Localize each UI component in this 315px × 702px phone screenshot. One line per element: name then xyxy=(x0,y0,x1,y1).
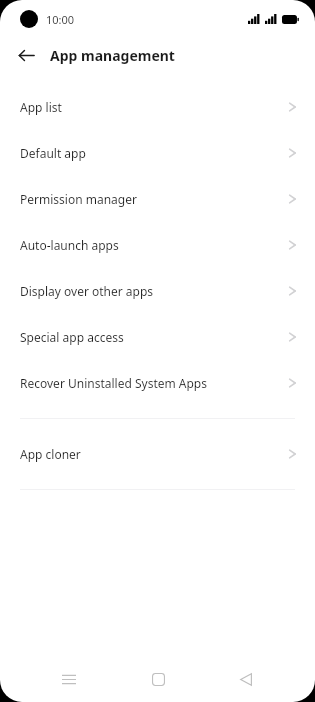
staticText: App list xyxy=(20,99,288,115)
staticText: Default app xyxy=(20,145,288,161)
button[interactable]: Special app access xyxy=(0,314,315,360)
button[interactable]: Display over other apps xyxy=(0,268,315,314)
button[interactable]: App cloner xyxy=(0,431,315,477)
button[interactable]: Home xyxy=(138,659,178,699)
staticText: Permission manager xyxy=(20,191,288,207)
staticText: Special app access xyxy=(20,329,288,345)
staticText: 10:00 xyxy=(46,12,75,27)
button[interactable]: Recent apps xyxy=(49,659,89,699)
button[interactable]: Permission manager xyxy=(0,176,315,222)
button[interactable]: Recover Uninstalled System Apps xyxy=(0,360,315,406)
button[interactable]: App list xyxy=(0,84,315,130)
button[interactable]: Auto-launch apps xyxy=(0,222,315,268)
staticText: App management xyxy=(50,46,175,65)
button[interactable]: Back xyxy=(226,659,266,699)
staticText: Recover Uninstalled System Apps xyxy=(20,375,288,391)
button[interactable]: Back xyxy=(12,41,40,69)
staticText: Display over other apps xyxy=(20,283,288,299)
staticText: Auto-launch apps xyxy=(20,237,288,253)
button[interactable]: Default app xyxy=(0,130,315,176)
staticText: App cloner xyxy=(20,446,288,462)
